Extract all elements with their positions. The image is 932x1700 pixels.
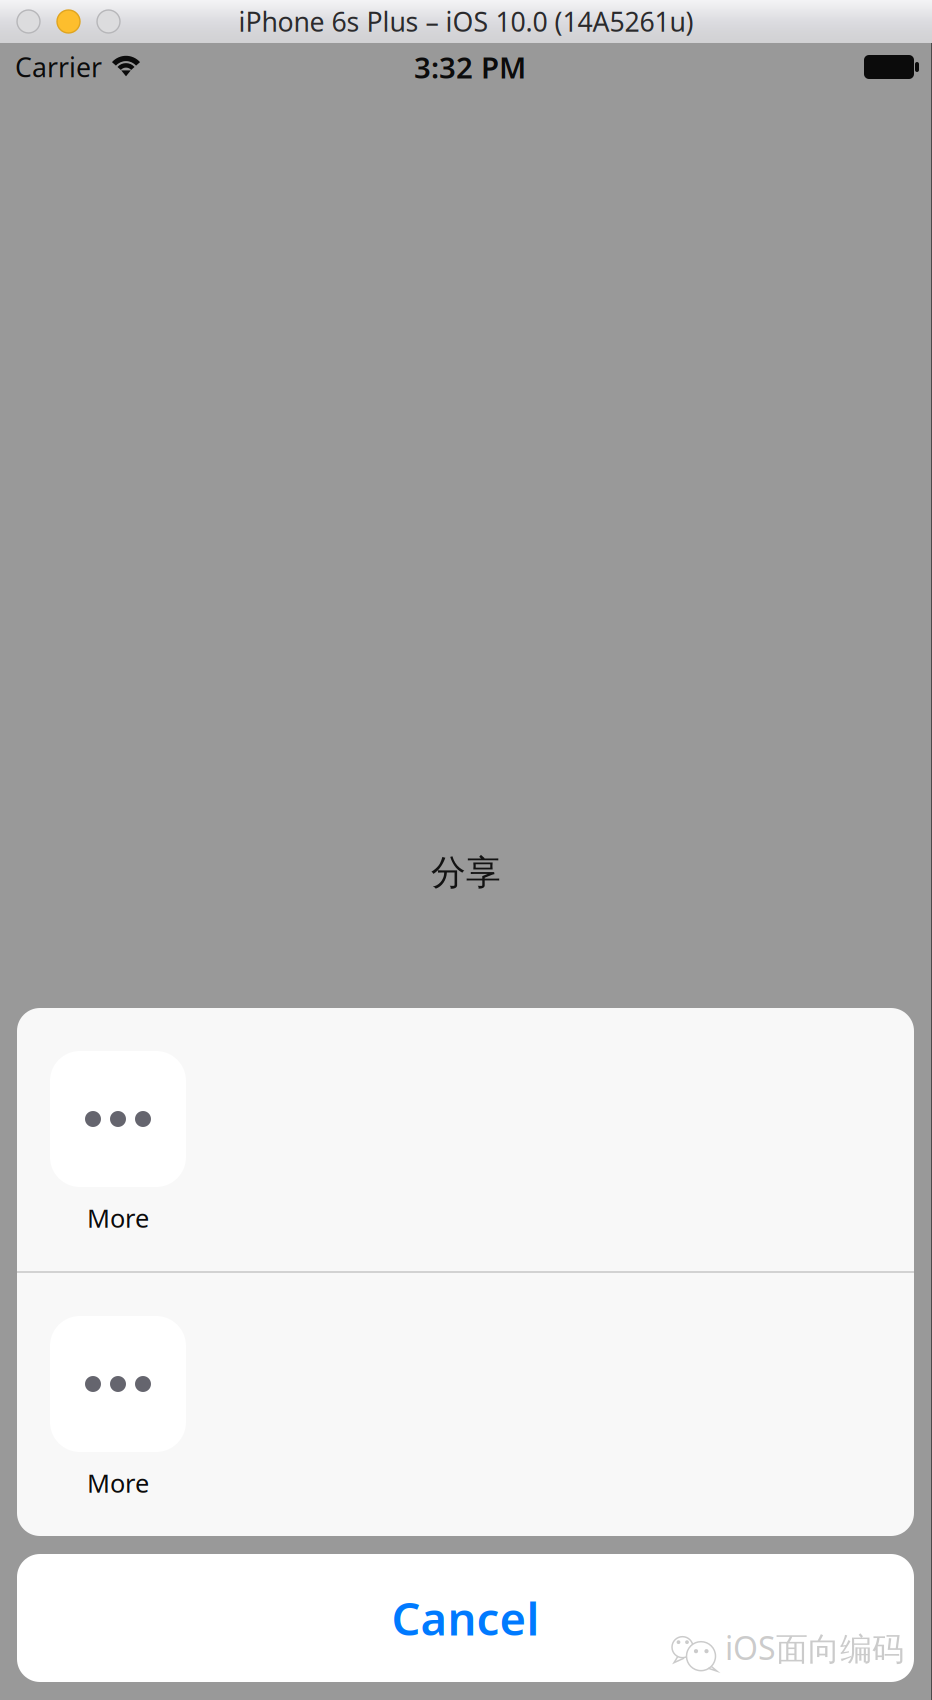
button[interactable]: Cancel <box>17 1554 914 1682</box>
staticText: iOS面向编码 <box>725 1626 904 1669</box>
button[interactable]: More <box>50 1008 186 1271</box>
staticText: 分享 <box>431 851 501 894</box>
button[interactable]: Close <box>17 10 40 33</box>
button[interactable]: Zoom <box>97 10 120 33</box>
staticText: 3:32 PM <box>414 47 526 86</box>
button[interactable]: More <box>50 1273 186 1536</box>
staticText: Cancel <box>391 1588 539 1648</box>
staticText: More <box>87 1466 149 1500</box>
staticText: Carrier <box>15 49 102 85</box>
staticText: More <box>87 1201 149 1235</box>
button[interactable]: Minimize <box>57 10 80 33</box>
staticText: iPhone 6s Plus – iOS 10.0 (14A5261u) <box>238 4 693 39</box>
